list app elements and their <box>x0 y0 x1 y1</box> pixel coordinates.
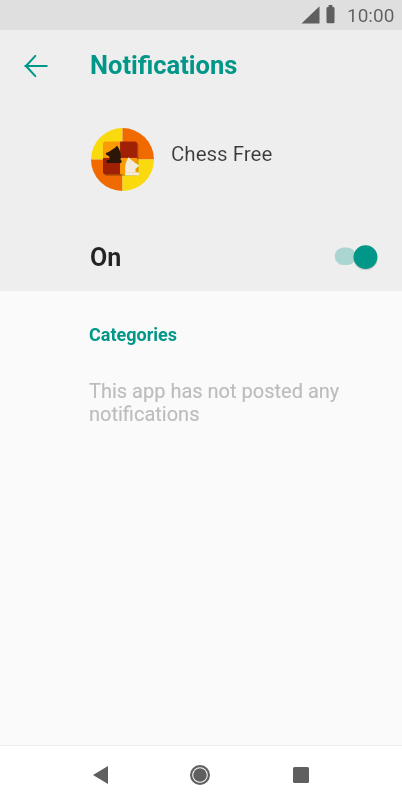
button[interactable]: Back <box>70 746 130 804</box>
button[interactable]: Back <box>14 44 58 88</box>
staticText: On <box>90 243 122 272</box>
button[interactable]: Home <box>170 746 230 804</box>
staticText: Chess Free <box>171 142 273 166</box>
button[interactable]: On <box>0 222 402 290</box>
button[interactable]: Recent apps <box>271 746 331 804</box>
staticText: 10:00 <box>347 4 395 26</box>
staticText: Categories <box>89 324 177 345</box>
staticText: Notifications <box>90 50 238 80</box>
staticText: This app has not posted any notification… <box>89 379 355 425</box>
